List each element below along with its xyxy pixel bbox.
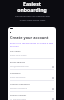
button[interactable]: Phone number <box>10 94 54 100</box>
staticText: Create your account <box>10 35 49 40</box>
button[interactable]: Back <box>10 28 13 29</box>
staticText: Confirm password <box>10 83 30 86</box>
staticText: Get started with our beautiful app in ju… <box>15 15 50 22</box>
staticText: Full name <box>10 50 21 53</box>
staticText: Email address <box>10 61 26 64</box>
button[interactable]: Full name <box>10 50 54 59</box>
staticText: +1 000 000 0000 <box>10 98 52 100</box>
staticText: Enter your name <box>10 54 54 57</box>
staticText: Enter your details below to create a new… <box>10 42 54 48</box>
button[interactable]: Confirm password <box>10 83 54 92</box>
staticText: you@example.com <box>10 65 52 68</box>
staticText: Easiest onboarding <box>17 1 47 14</box>
staticText: Phone number <box>10 94 27 97</box>
staticText: Enter password <box>10 76 52 79</box>
staticText: Password <box>10 72 21 75</box>
staticText: Repeat password <box>10 87 52 90</box>
button[interactable]: Password <box>10 72 54 81</box>
button[interactable]: Email address <box>10 61 54 70</box>
